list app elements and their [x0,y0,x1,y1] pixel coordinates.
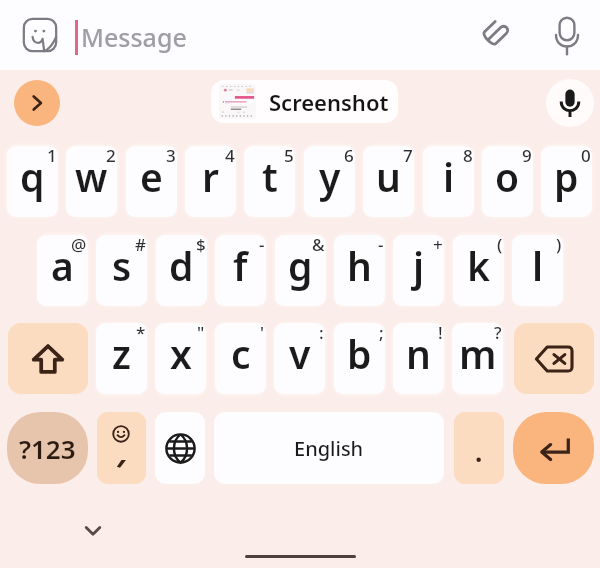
staticText: . [475,434,483,469]
button[interactable]: z [96,323,147,394]
staticText: z [112,327,131,380]
staticText: n [406,327,431,380]
button[interactable]: More [14,80,60,126]
button[interactable]: English [214,412,444,484]
staticText: j [413,239,425,292]
button[interactable]: Period [454,412,504,484]
staticText: q [20,150,45,203]
staticText: ) [556,235,562,256]
button[interactable]: v [274,323,325,394]
staticText: u [376,150,401,203]
staticText: c [231,327,251,380]
button[interactable]: k [453,235,504,306]
staticText: w [75,150,108,203]
staticText: t [262,150,278,203]
button[interactable]: p [541,146,592,217]
staticText: - [259,235,265,256]
staticText: * [136,323,146,344]
staticText: 2 [106,146,116,167]
button[interactable]: j [393,235,444,306]
staticText: 1 [47,146,57,167]
staticText: 5 [284,146,294,167]
staticText: Message [81,20,187,54]
button[interactable]: w [66,146,117,217]
button[interactable]: Voice typing [546,79,594,127]
button[interactable]: o [482,146,533,217]
button[interactable]: f [215,235,266,306]
button[interactable]: y [304,146,355,217]
staticText: i [443,150,455,203]
button[interactable]: r [185,146,236,217]
button[interactable]: e [126,146,177,217]
staticText: g [288,239,313,292]
button[interactable]: n [393,323,444,394]
button[interactable]: q [7,146,58,217]
staticText: 0 [581,146,591,167]
staticText: f [233,239,248,292]
staticText: # [135,235,146,256]
staticText: v [289,327,311,380]
staticText: p [554,150,579,203]
button[interactable]: m [452,323,503,394]
staticText: d [169,239,194,292]
button[interactable]: Voice input [547,15,587,55]
button[interactable]: Stickers [22,17,58,53]
staticText: ( [497,235,503,256]
staticText: x [170,327,192,380]
staticText: m [459,327,497,380]
staticText: Screenshot [269,87,389,117]
staticText: @ [71,235,87,256]
staticText: s [112,239,132,292]
staticText: English [294,435,364,462]
staticText: + [433,235,443,256]
staticText: 8 [463,146,473,167]
button[interactable]: Emoji [97,412,146,484]
button[interactable]: Shift [8,323,88,394]
staticText: r [202,150,219,203]
staticText: 9 [522,146,532,167]
button[interactable]: t [244,146,295,217]
button[interactable]: Enter [513,412,594,484]
staticText: ? [494,323,502,344]
staticText: 3 [166,146,176,167]
staticText: ' [260,323,265,344]
button[interactable]: Attach [476,15,513,52]
button[interactable]: Switch language [155,412,205,484]
staticText: ?123 [19,431,76,466]
staticText: : [319,323,324,344]
staticText: o [495,150,520,203]
staticText: " [197,323,205,344]
button[interactable]: b [334,323,385,394]
staticText: e [140,150,163,203]
button[interactable]: h [334,235,385,306]
staticText: ; [379,323,384,344]
button[interactable]: s [96,235,147,306]
button[interactable]: g [275,235,326,306]
staticText: 4 [225,146,235,167]
staticText: a [51,239,74,292]
staticText: y [319,150,341,203]
button[interactable]: Backspace [514,323,594,394]
button[interactable]: Hide keyboard [79,517,107,545]
staticText: - [378,235,384,256]
button[interactable]: ?123 [7,412,88,484]
staticText: l [532,239,544,292]
button[interactable]: c [215,323,266,394]
button[interactable]: u [363,146,414,217]
staticText: k [467,239,490,292]
staticText: 6 [344,146,354,167]
staticText: h [347,239,372,292]
staticText: 7 [403,146,413,167]
button[interactable]: a [37,235,88,306]
staticText: b [347,327,372,380]
staticText: ! [438,323,443,344]
button[interactable]: x [155,323,206,394]
button[interactable]: Screenshot [211,80,398,123]
button[interactable]: l [512,235,563,306]
button[interactable]: d [156,235,207,306]
staticText: & [312,235,325,256]
button[interactable]: i [423,146,474,217]
staticText: $ [196,235,206,256]
